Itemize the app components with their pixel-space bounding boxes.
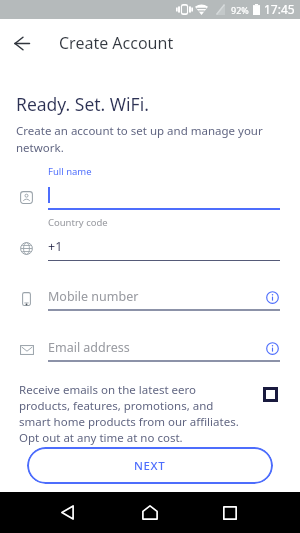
staticText: Email address (48, 339, 130, 356)
staticText: 92% (231, 4, 249, 16)
staticText: Mobile number (48, 288, 139, 305)
button[interactable]: Back (50, 492, 84, 533)
button[interactable]: Country code (0, 219, 300, 261)
staticText: Country code (48, 216, 108, 229)
staticText: Create Account (59, 32, 174, 54)
staticText: +1 (48, 238, 63, 255)
button[interactable]: Email address (0, 320, 300, 362)
staticText: Ready. Set. WiFi. (16, 92, 149, 116)
button[interactable]: Mobile number (0, 269, 300, 311)
button[interactable]: Back (6, 27, 38, 59)
button[interactable]: More information (264, 289, 280, 305)
staticText: Full name (48, 165, 92, 178)
staticText: NEXT (134, 458, 166, 474)
staticText: 17:45 (264, 1, 295, 17)
staticText: Create an account to set up and manage y… (16, 123, 278, 155)
button[interactable]: Full name (0, 168, 300, 210)
button[interactable]: Home (133, 492, 167, 533)
button[interactable]: More information (264, 340, 280, 356)
button[interactable]: Receive emails on the latest eero produc… (19, 382, 279, 446)
button[interactable]: Recent apps (213, 492, 247, 533)
staticText: Receive emails on the latest eero produc… (19, 382, 242, 446)
button[interactable]: NEXT (27, 447, 273, 484)
